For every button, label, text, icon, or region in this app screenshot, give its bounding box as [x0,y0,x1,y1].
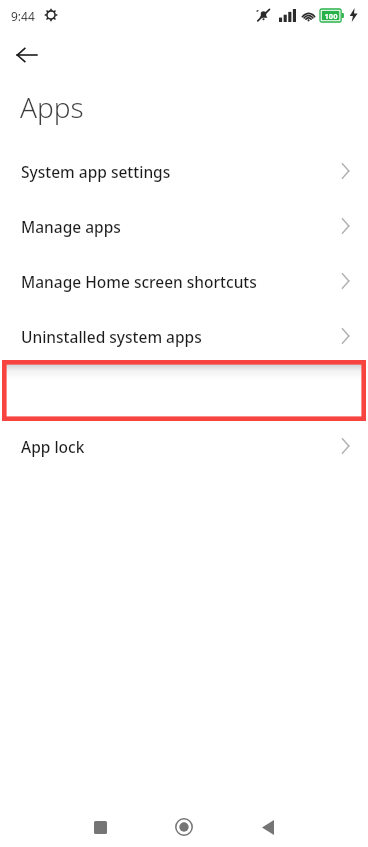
button[interactable]: Permissions [0,364,368,418]
button[interactable]: Uninstalled system apps [0,309,368,363]
staticText: Uninstalled system apps [21,326,340,347]
button[interactable]: Back [252,811,284,843]
button[interactable]: Back [8,36,46,74]
staticText: Manage Home screen shortcuts [21,271,340,292]
button[interactable]: Manage apps [0,199,368,253]
staticText: App lock [21,436,340,457]
button[interactable]: Home [168,811,200,843]
button[interactable]: Recent apps [84,811,116,843]
button[interactable]: App lock [0,419,368,473]
staticText: Manage apps [21,216,340,237]
button[interactable]: System app settings [0,144,368,198]
staticText: Apps [20,88,84,126]
staticText: 100 [321,11,341,21]
staticText: System app settings [21,161,340,182]
staticText: 9:44 [11,8,35,24]
button[interactable]: Manage Home screen shortcuts [0,254,368,308]
